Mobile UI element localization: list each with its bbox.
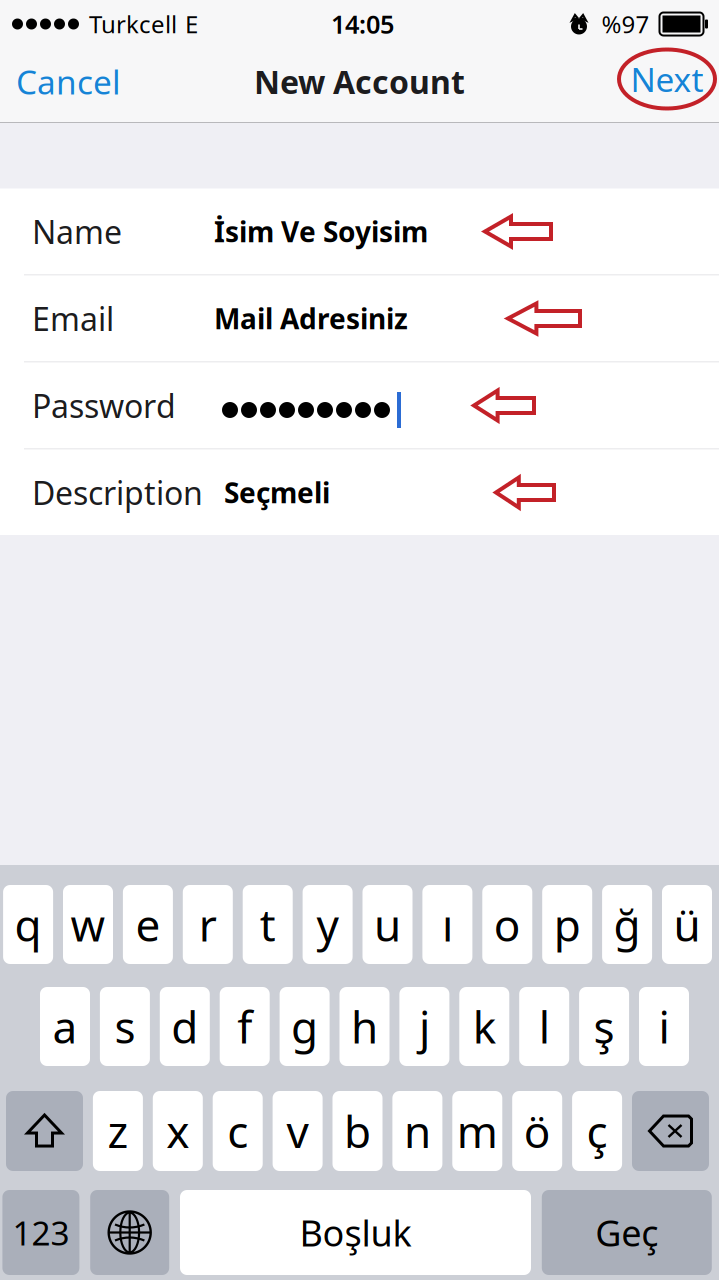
staticText: Turkcell xyxy=(89,8,177,40)
button[interactable]: Shift xyxy=(6,1091,83,1171)
staticText: x xyxy=(166,1102,189,1160)
staticText: Description xyxy=(32,471,203,514)
staticText: ğ xyxy=(614,895,641,954)
button[interactable]: u xyxy=(362,885,412,964)
staticText: b xyxy=(344,1102,371,1160)
staticText: u xyxy=(374,895,401,954)
staticText: f xyxy=(237,997,252,1056)
button[interactable]: Next keyboard xyxy=(90,1190,169,1275)
staticText: Email xyxy=(32,297,114,340)
staticText: p xyxy=(554,895,581,954)
staticText: k xyxy=(473,997,496,1056)
button[interactable]: Delete xyxy=(632,1091,709,1171)
button[interactable]: Name xyxy=(0,188,719,274)
button[interactable]: q xyxy=(3,885,53,964)
button[interactable]: h xyxy=(339,987,389,1066)
staticText: E xyxy=(185,8,198,40)
staticText: New Account xyxy=(254,60,465,103)
button[interactable]: c xyxy=(213,1091,263,1171)
button[interactable]: Geç xyxy=(542,1190,712,1275)
staticText: o xyxy=(494,895,521,954)
staticText: Seçmeli xyxy=(224,474,330,511)
staticText: ö xyxy=(524,1102,551,1160)
staticText: y xyxy=(317,895,339,954)
button[interactable]: Next xyxy=(617,47,717,123)
staticText: Name xyxy=(32,210,122,253)
staticText: m xyxy=(457,1102,498,1160)
staticText: Cancel xyxy=(16,59,121,104)
button[interactable]: i xyxy=(639,987,689,1066)
staticText: q xyxy=(15,895,42,954)
button[interactable]: Boşluk xyxy=(180,1190,531,1275)
staticText: Boşluk xyxy=(299,1209,411,1256)
button[interactable]: 123 xyxy=(2,1190,79,1275)
staticText: w xyxy=(70,895,105,954)
button[interactable]: ı xyxy=(422,885,472,964)
button[interactable]: ü xyxy=(662,885,712,964)
staticText: Next xyxy=(630,57,703,101)
button[interactable]: Password xyxy=(0,362,719,448)
staticText: c xyxy=(227,1102,248,1160)
staticText: s xyxy=(114,997,135,1056)
staticText: %97 xyxy=(601,8,649,40)
staticText: ı xyxy=(442,895,453,954)
staticText: v xyxy=(287,1102,309,1160)
button[interactable]: Description xyxy=(0,449,719,535)
staticText: ş xyxy=(594,997,615,1056)
staticText: ç xyxy=(587,1102,608,1160)
staticText: j xyxy=(419,997,430,1056)
staticText: i xyxy=(658,997,669,1056)
button[interactable]: y xyxy=(303,885,353,964)
button[interactable]: g xyxy=(280,987,330,1066)
button[interactable]: ğ xyxy=(602,885,652,964)
staticText: Mail Adresiniz xyxy=(214,300,408,337)
button[interactable]: x xyxy=(153,1091,203,1171)
staticText: n xyxy=(404,1102,431,1160)
button[interactable]: o xyxy=(482,885,532,964)
button[interactable]: ç xyxy=(572,1091,622,1171)
staticText: a xyxy=(52,997,77,1056)
button[interactable]: b xyxy=(332,1091,382,1171)
button[interactable]: n xyxy=(392,1091,442,1171)
button[interactable]: k xyxy=(459,987,509,1066)
button[interactable]: t xyxy=(243,885,293,964)
button[interactable]: e xyxy=(123,885,173,964)
button[interactable]: m xyxy=(452,1091,502,1171)
staticText: g xyxy=(291,997,318,1056)
staticText: 14:05 xyxy=(331,7,394,41)
button[interactable]: d xyxy=(160,987,210,1066)
button[interactable]: ö xyxy=(512,1091,562,1171)
staticText: Geç xyxy=(595,1209,658,1256)
button[interactable]: ş xyxy=(579,987,629,1066)
staticText: ü xyxy=(673,895,700,954)
staticText: t xyxy=(260,895,276,954)
staticText: d xyxy=(171,997,198,1056)
button[interactable]: l xyxy=(519,987,569,1066)
button[interactable]: r xyxy=(183,885,233,964)
button[interactable]: f xyxy=(220,987,270,1066)
button[interactable]: Cancel xyxy=(0,48,137,123)
button[interactable]: a xyxy=(40,987,90,1066)
button[interactable]: w xyxy=(63,885,113,964)
staticText: Password xyxy=(32,384,176,427)
staticText: İsim Ve Soyisim xyxy=(214,213,428,250)
button[interactable]: z xyxy=(93,1091,143,1171)
staticText: z xyxy=(107,1102,128,1160)
button[interactable]: v xyxy=(273,1091,323,1171)
staticText: h xyxy=(351,997,378,1056)
button[interactable]: Email xyxy=(0,275,719,361)
button[interactable]: s xyxy=(100,987,150,1066)
button[interactable]: p xyxy=(542,885,592,964)
button[interactable]: j xyxy=(399,987,449,1066)
staticText: l xyxy=(539,997,550,1056)
staticText: r xyxy=(199,895,217,954)
staticText: e xyxy=(135,895,160,954)
staticText: 123 xyxy=(12,1210,69,1255)
